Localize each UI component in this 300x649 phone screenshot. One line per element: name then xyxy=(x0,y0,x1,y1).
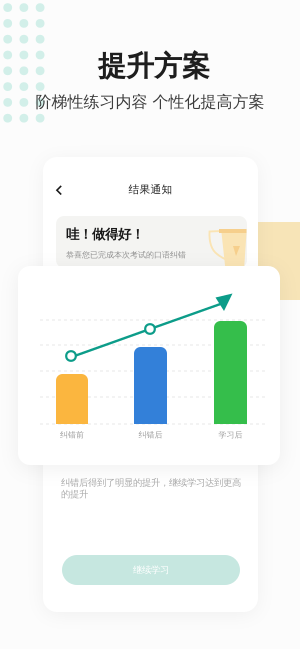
staticText: 纠错后 xyxy=(138,430,162,440)
staticText: 提升方案 xyxy=(98,49,210,83)
staticText: 学习后 xyxy=(218,430,242,440)
button[interactable]: 继续学习 xyxy=(62,555,240,585)
staticText: 继续学习 xyxy=(133,564,169,576)
staticText: 哇！做得好！ xyxy=(66,226,144,242)
staticText: 结果通知 xyxy=(128,183,172,196)
staticText: 恭喜您已完成本次考试的口语纠错 xyxy=(66,250,186,260)
staticText: 纠错后得到了明显的提升，继续学习达到更高的提升 xyxy=(61,477,241,500)
staticText: 阶梯性练习内容 个性化提高方案 xyxy=(35,92,264,112)
button[interactable]: 返回 xyxy=(49,178,69,202)
staticText: 纠错前 xyxy=(60,430,84,440)
